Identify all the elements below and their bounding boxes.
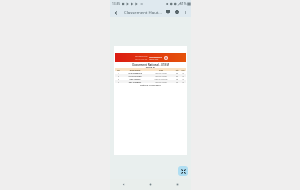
staticText: Pts	[174, 69, 180, 71]
staticText: ENT. CAMBRAI	[122, 81, 148, 83]
staticText: Classement National - U18 M	[114, 63, 187, 67]
staticText: AS LILLE HAND	[122, 75, 148, 77]
button[interactable]: Home	[137, 179, 164, 190]
staticText: 14	[180, 72, 186, 74]
button[interactable]: Print	[173, 8, 181, 16]
staticText: Classement Haut...	[124, 9, 162, 15]
staticText: Club	[148, 69, 174, 71]
button[interactable]: More options	[182, 9, 189, 16]
button[interactable]: 2	[115, 74, 186, 77]
staticText: Rg	[115, 69, 122, 71]
button[interactable]: 1	[115, 71, 186, 74]
staticText: 52	[174, 75, 180, 77]
staticText: US DUNKERQUE	[122, 72, 148, 74]
staticText: Poule 01	[114, 66, 187, 69]
staticText: 13:35	[112, 2, 121, 6]
staticText: 4	[115, 81, 122, 83]
staticText: HBC 59 NORD	[148, 72, 174, 74]
staticText: 3	[115, 78, 122, 80]
staticText: Nom Equipe	[122, 69, 148, 71]
staticText: HBC 59 NORD	[148, 81, 174, 83]
button[interactable]: Recent apps	[164, 179, 191, 190]
button[interactable]: Fit to screen	[178, 166, 188, 176]
staticText: Jou	[180, 69, 186, 71]
staticText: 61%	[180, 2, 187, 6]
staticText: Edité le 12/05/2024	[114, 84, 187, 87]
staticText: HBC AMIENS	[122, 78, 148, 80]
button[interactable]: Back	[111, 8, 120, 17]
staticText: 1	[115, 72, 122, 74]
button[interactable]: 3	[115, 77, 186, 80]
staticText: HBC 80 SOMME	[148, 78, 174, 80]
button[interactable]: Save	[164, 8, 172, 16]
staticText: 14	[180, 81, 186, 83]
staticText: 14	[180, 75, 186, 77]
staticText: FEDERATION	[135, 55, 148, 58]
staticText: 2	[115, 75, 122, 77]
staticText: FRANCAISE DE	[135, 58, 148, 60]
staticText: 14	[180, 78, 186, 80]
staticText: HBC 59 NORD	[148, 75, 174, 77]
button[interactable]: Back	[110, 179, 137, 190]
staticText: HANDBALL	[149, 55, 163, 58]
staticText: 56	[174, 72, 180, 74]
staticText: 45	[174, 81, 180, 83]
staticText: LIGUE HDF	[149, 58, 159, 60]
staticText: 48	[174, 78, 180, 80]
button[interactable]: 4	[115, 80, 186, 83]
